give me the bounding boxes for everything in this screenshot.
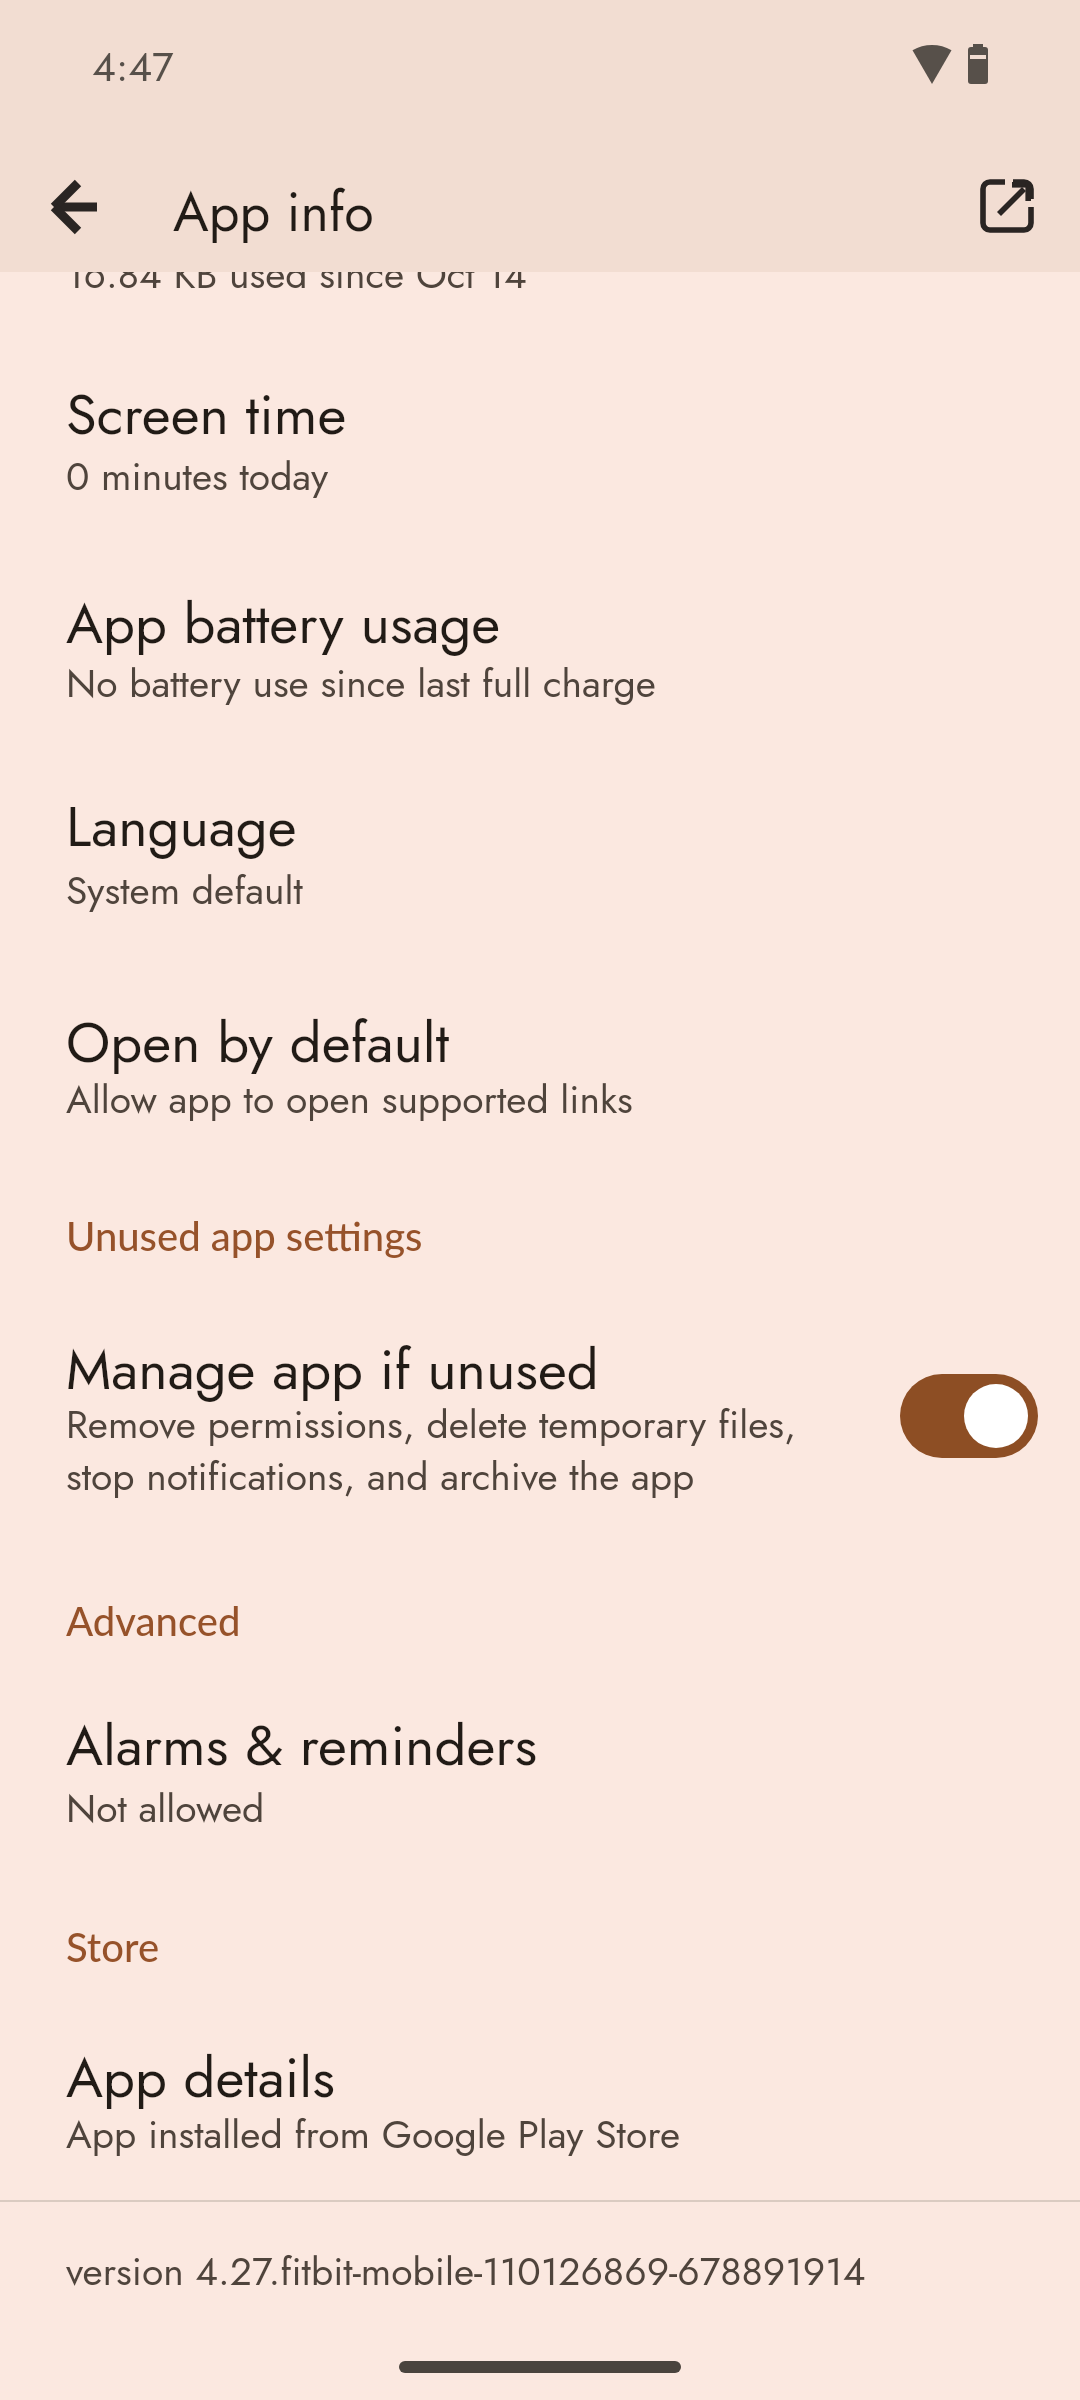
staticText: Advanced (66, 1597, 241, 1645)
staticText: stop notifications, and archive the app (66, 1448, 695, 1504)
staticText: Screen time (66, 374, 347, 455)
staticText: 16.84 KB used since Oct 14 (66, 246, 527, 302)
button[interactable] (900, 1374, 1038, 1458)
staticText: App info (173, 173, 374, 251)
staticText: Allow app to open supported links (66, 1071, 633, 1127)
button[interactable] (0, 360, 1080, 560)
staticText: Open by default (66, 1002, 450, 1083)
staticText: Unused app settings (66, 1212, 423, 1260)
staticText: App details (66, 2037, 335, 2118)
button[interactable] (0, 1688, 1080, 1868)
button[interactable] (0, 984, 1080, 1184)
staticText: App installed from Google Play Store (66, 2106, 681, 2162)
staticText: 4:47 (92, 37, 174, 96)
staticText: Not allowed (66, 1780, 265, 1836)
button[interactable] (0, 2016, 1080, 2196)
staticText: Language (66, 786, 297, 867)
staticText: System default (66, 862, 303, 918)
staticText: App battery usage (66, 583, 501, 664)
staticText: Remove permissions, delete temporary fil… (66, 1396, 796, 1452)
staticText: Alarms & reminders (66, 1705, 538, 1786)
button[interactable] (0, 1310, 1080, 1550)
staticText: 0 minutes today (66, 448, 329, 504)
button[interactable] (0, 566, 1080, 766)
staticText: Store (66, 1923, 160, 1971)
button[interactable] (960, 158, 1056, 254)
staticText: No battery use since last full charge (66, 655, 656, 711)
button[interactable] (0, 772, 1080, 972)
staticText: version 4.27.fitbit-mobile-110126869-678… (66, 2243, 866, 2299)
button[interactable] (30, 160, 126, 256)
staticText: Manage app if unused (66, 1329, 599, 1410)
